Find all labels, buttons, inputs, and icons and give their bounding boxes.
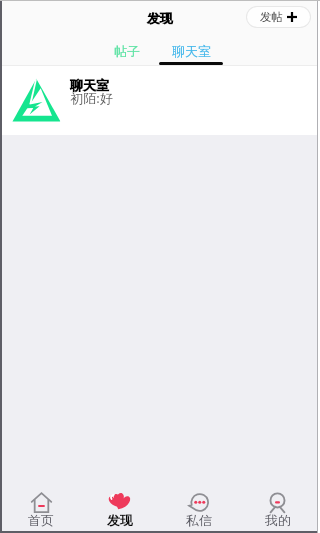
staticText: 私信 bbox=[186, 512, 212, 528]
button[interactable]: 发帖 bbox=[247, 7, 310, 27]
button[interactable]: 聊天室 bbox=[159, 34, 223, 66]
staticText: 发现 bbox=[107, 512, 133, 528]
staticText: 发现 bbox=[147, 10, 173, 26]
staticText: 首页 bbox=[28, 512, 54, 528]
staticText: 初陌:好 bbox=[70, 89, 113, 107]
staticText: 帖子 bbox=[114, 43, 140, 59]
staticText: 发帖 bbox=[260, 10, 283, 24]
staticText: 聊天室 bbox=[70, 77, 109, 93]
staticText: 聊天室 bbox=[172, 43, 211, 59]
button[interactable]: Discover bbox=[80, 482, 159, 531]
button[interactable]: 聊天室 bbox=[2, 66, 317, 135]
staticText: 我的 bbox=[265, 512, 291, 528]
button[interactable]: Messages bbox=[159, 482, 238, 531]
button[interactable]: 帖子 bbox=[95, 34, 159, 66]
button[interactable]: Profile bbox=[238, 482, 317, 531]
button[interactable]: Home bbox=[2, 482, 80, 531]
